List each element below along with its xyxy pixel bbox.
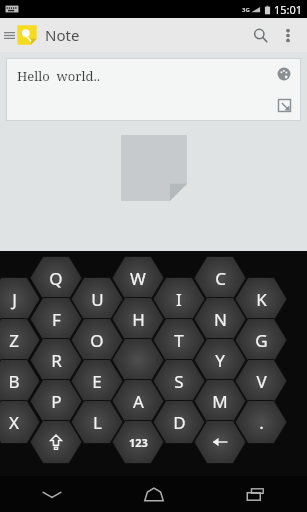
button[interactable]: 123 bbox=[112, 421, 164, 463]
staticText: U bbox=[91, 288, 104, 311]
button[interactable] bbox=[112, 339, 164, 381]
button[interactable]: Hide keyboard bbox=[0, 476, 103, 512]
staticText: Note bbox=[45, 25, 80, 45]
button[interactable]: D bbox=[153, 401, 205, 443]
staticText: P bbox=[51, 390, 62, 413]
button[interactable]: H bbox=[112, 298, 164, 340]
button[interactable]: . bbox=[235, 401, 287, 443]
staticText: H bbox=[132, 308, 145, 331]
staticText: E bbox=[92, 370, 102, 393]
button[interactable]: Q bbox=[30, 257, 82, 299]
button[interactable]: V bbox=[235, 360, 287, 402]
staticText: 15:01 bbox=[274, 2, 303, 17]
button[interactable]: W bbox=[112, 257, 164, 299]
staticText: Z bbox=[9, 329, 19, 352]
button[interactable]: O bbox=[71, 319, 123, 361]
button[interactable]: N bbox=[194, 298, 246, 340]
button[interactable]: Shift bbox=[30, 421, 82, 463]
staticText: . bbox=[259, 411, 264, 434]
button[interactable]: P bbox=[30, 380, 82, 422]
staticText: O bbox=[90, 329, 104, 352]
staticText: M bbox=[212, 390, 228, 413]
staticText: G bbox=[255, 329, 268, 352]
button[interactable]: F bbox=[30, 298, 82, 340]
staticText: D bbox=[173, 411, 186, 434]
staticText: 3G bbox=[242, 6, 250, 14]
staticText: Q bbox=[49, 267, 63, 290]
button[interactable]: G bbox=[235, 319, 287, 361]
button[interactable]: Z bbox=[0, 319, 40, 361]
button[interactable]: Navigate up bbox=[2, 20, 16, 50]
button[interactable]: X bbox=[0, 401, 40, 443]
button[interactable]: T bbox=[153, 319, 205, 361]
staticText: X bbox=[9, 411, 19, 434]
staticText: W bbox=[130, 267, 146, 290]
staticText: L bbox=[93, 411, 102, 434]
button[interactable]: S bbox=[153, 360, 205, 402]
button[interactable]: K bbox=[235, 278, 287, 320]
button[interactable]: Hello world.. bbox=[7, 59, 300, 120]
staticText: V bbox=[256, 370, 267, 393]
button[interactable]: B bbox=[0, 360, 40, 402]
staticText: C bbox=[215, 267, 226, 290]
staticText: R bbox=[51, 349, 62, 372]
button[interactable]: J bbox=[0, 278, 40, 320]
staticText: F bbox=[52, 308, 61, 331]
button[interactable]: Y bbox=[194, 339, 246, 381]
button[interactable]: C bbox=[194, 257, 246, 299]
staticText: N bbox=[214, 308, 227, 331]
staticText: J bbox=[12, 288, 17, 311]
button[interactable] bbox=[121, 135, 187, 203]
staticText: I bbox=[176, 288, 182, 311]
staticText: Y bbox=[215, 349, 225, 372]
staticText: T bbox=[174, 329, 184, 352]
button[interactable]: U bbox=[71, 278, 123, 320]
button[interactable]: E bbox=[71, 360, 123, 402]
button[interactable]: Note app icon bbox=[16, 24, 38, 46]
button[interactable]: I bbox=[153, 278, 205, 320]
button[interactable]: R bbox=[30, 339, 82, 381]
staticText: S bbox=[174, 370, 184, 393]
staticText: A bbox=[133, 390, 144, 413]
staticText: 123 bbox=[129, 435, 148, 450]
button[interactable]: Search bbox=[245, 20, 275, 50]
staticText: Hello world.. bbox=[17, 67, 100, 85]
staticText: B bbox=[8, 370, 20, 393]
button[interactable]: A bbox=[112, 380, 164, 422]
button[interactable]: Change color bbox=[273, 63, 295, 85]
button[interactable]: Backspace bbox=[194, 421, 246, 463]
button[interactable]: More options bbox=[275, 22, 301, 48]
button[interactable]: Recent apps bbox=[205, 476, 307, 512]
button[interactable]: L bbox=[71, 401, 123, 443]
button[interactable]: M bbox=[194, 380, 246, 422]
button[interactable]: Resize note bbox=[273, 94, 295, 116]
button[interactable]: Home bbox=[103, 476, 205, 512]
staticText: K bbox=[256, 288, 267, 311]
